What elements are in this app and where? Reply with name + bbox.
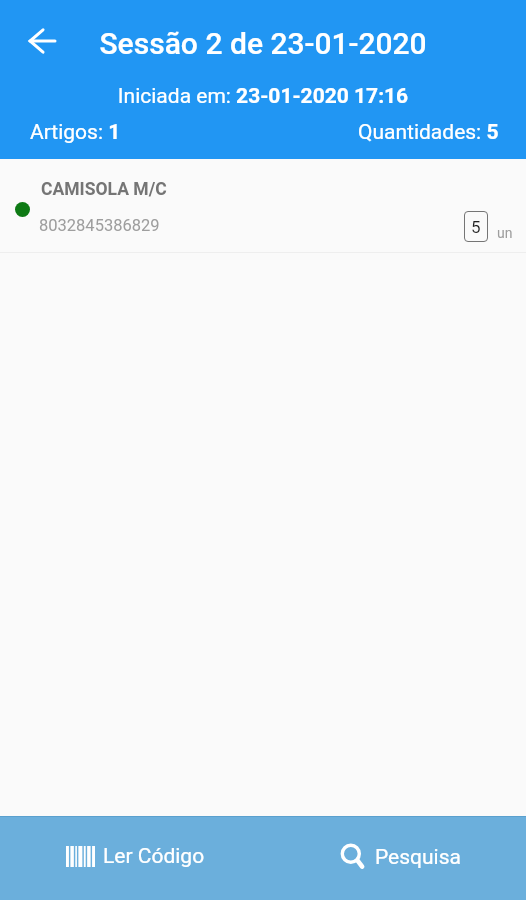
button[interactable]: 5 <box>464 211 488 242</box>
button[interactable]: Back <box>19 18 64 63</box>
staticText: un <box>497 225 513 241</box>
button[interactable]: Ler Código <box>66 844 205 869</box>
staticText: 8032845386829 <box>39 216 160 235</box>
staticText: Iniciada em: 23-01-2020 17:16 <box>0 84 526 109</box>
staticText: Pesquisa <box>375 845 461 870</box>
staticText: Artigos: 1 <box>30 120 121 145</box>
button[interactable]: Pesquisa <box>340 844 461 871</box>
button[interactable]: CAMISOLA M/C <box>0 159 526 253</box>
staticText: 5 <box>471 217 481 237</box>
staticText: Sessão 2 de 23-01-2020 <box>0 26 526 61</box>
staticText: Quantidades: 5 <box>358 120 499 145</box>
staticText: CAMISOLA M/C <box>41 179 167 200</box>
staticText: Ler Código <box>103 844 205 869</box>
